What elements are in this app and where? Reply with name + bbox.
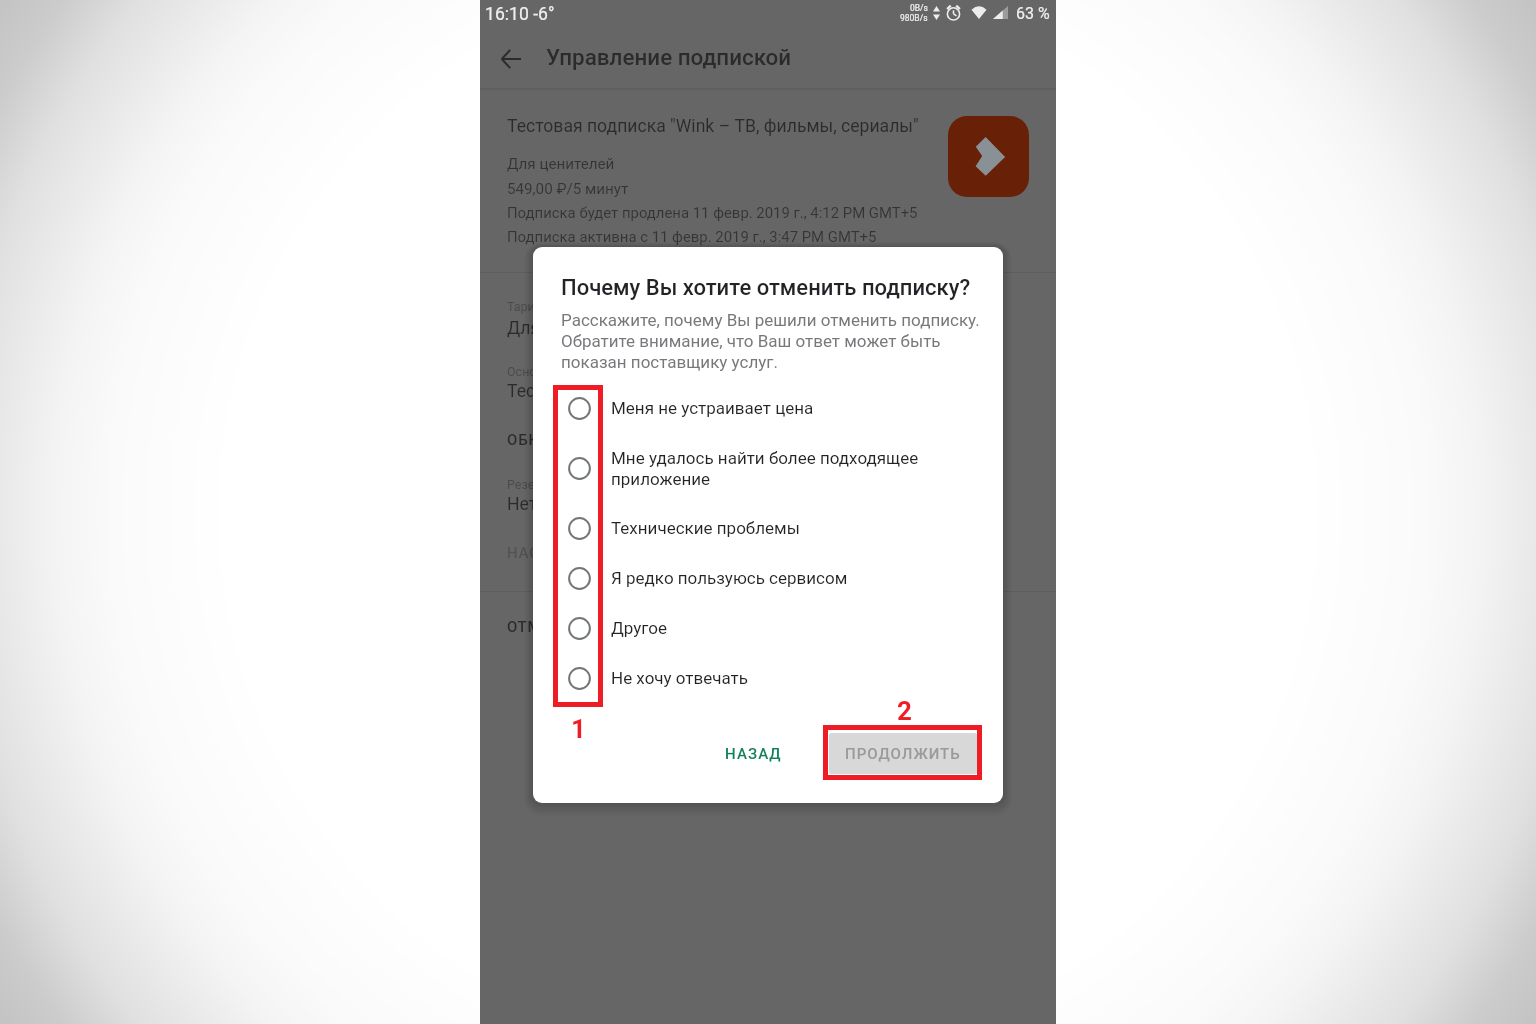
staticText: Расскажите, почему Вы решили отменить по…	[561, 310, 980, 372]
staticText: 1	[571, 714, 586, 744]
staticText: Тестовая подписка "Wink – ТВ, фильмы, се…	[507, 116, 919, 137]
staticText: Я редко пользуюсь сервисом	[611, 568, 848, 588]
staticText: Нет	[507, 494, 538, 515]
staticText: 549,00 ₽/5 минут	[507, 180, 629, 198]
staticText: Не хочу отвечать	[611, 668, 749, 688]
staticText: Подписка будет продлена 11 февр. 2019 г.…	[507, 204, 918, 221]
staticText: 980B/s	[900, 13, 928, 23]
button[interactable]: Не хочу отвечать	[533, 653, 1003, 703]
staticText: Для ценителей	[507, 155, 615, 173]
button[interactable]: ОТМЕНИТЬ ПОДПИСКУ	[507, 618, 687, 636]
staticText: Другое	[611, 618, 667, 638]
staticText: Почему Вы хотите отменить подписку?	[561, 275, 971, 301]
staticText: Подписка активна с 11 февр. 2019 г., 3:4…	[507, 228, 877, 245]
button[interactable]: ПРОДОЛЖИТЬ	[829, 733, 977, 774]
button[interactable]: Другое	[533, 603, 1003, 653]
staticText: Для ценителей	[507, 318, 632, 339]
button[interactable]: Я редко пользуюсь сервисом	[533, 553, 1003, 603]
staticText: Тарифный план	[507, 299, 600, 314]
staticText: 0B/s	[910, 3, 928, 13]
button[interactable]: НАЗАД	[710, 733, 796, 774]
staticText: Мне удалось найти более подходящее прило…	[611, 448, 919, 489]
button[interactable]: Мне удалось найти более подходящее прило…	[533, 433, 1003, 503]
staticText: НАЗАД	[725, 745, 782, 763]
staticText: Меня не устраивает цена	[611, 398, 814, 418]
button[interactable]: Меня не устраивает цена	[533, 383, 1003, 433]
button[interactable]: Back	[495, 43, 527, 75]
button[interactable]: Технические проблемы	[533, 503, 1003, 553]
staticText: 2	[897, 696, 912, 726]
staticText: ПРОДОЛЖИТЬ	[845, 745, 961, 763]
button[interactable]: НАСТРОИТЬ	[507, 544, 603, 562]
staticText: Основная подписка	[507, 364, 624, 379]
staticText: Управление подпиской	[546, 44, 792, 70]
staticText: Технические проблемы	[611, 518, 800, 538]
staticText: Тестовая подписка	[507, 381, 666, 402]
staticText: Резервный способ оплаты	[507, 477, 665, 492]
staticText: 63 %	[1016, 4, 1050, 23]
button[interactable]: ОБНОВИТЬ	[507, 431, 593, 449]
staticText: 16:10 -6°	[485, 4, 555, 25]
button[interactable]: Wink app icon	[948, 116, 1029, 197]
